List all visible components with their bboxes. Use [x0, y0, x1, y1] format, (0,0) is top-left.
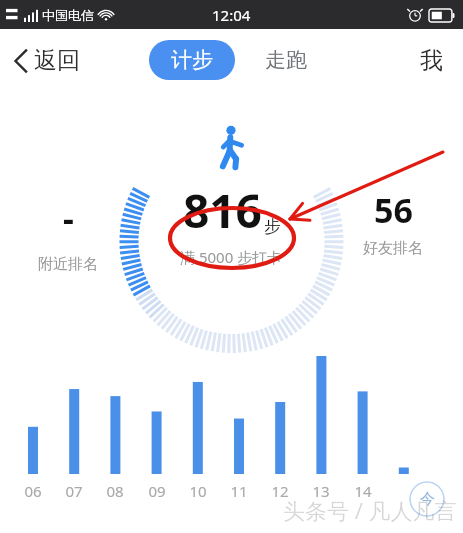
staticText: 头条号 / 凡人凡言 [283, 495, 457, 525]
staticText: 06 [19, 481, 47, 501]
button[interactable]: 走跑 [257, 40, 315, 80]
button[interactable]: 返回 [10, 40, 84, 81]
staticText: 10 [184, 481, 212, 501]
button[interactable]: Today [409, 481, 445, 517]
staticText: 12 [266, 481, 294, 501]
staticText: 满 5000 步打卡 [180, 247, 283, 267]
staticText: 56 [374, 187, 413, 233]
button[interactable]: 计步 [149, 40, 235, 80]
staticText: 09 [143, 481, 171, 501]
staticText: 08 [101, 481, 129, 501]
button[interactable]: - [24, 189, 112, 280]
staticText: 好友排名 [363, 239, 423, 258]
staticText: 14 [349, 481, 377, 501]
staticText: 走跑 [265, 47, 307, 73]
staticText: 12:04 [212, 5, 251, 25]
staticText: 步 [264, 216, 281, 237]
staticText: 中国电信 [42, 7, 94, 23]
staticText: 816 [183, 179, 262, 242]
button[interactable]: 56 [349, 181, 437, 264]
staticText: 13 [307, 481, 335, 501]
staticText: 附近排名 [38, 255, 98, 274]
staticText: 11 [225, 481, 253, 501]
staticText: 我 [420, 46, 443, 75]
staticText: 今 [420, 490, 435, 509]
staticText: 计步 [171, 47, 213, 73]
staticText: 返回 [34, 46, 80, 75]
staticText: - [63, 195, 74, 241]
staticText: 07 [60, 481, 88, 501]
other: Walking [215, 125, 249, 171]
button[interactable]: 我 [414, 40, 449, 81]
